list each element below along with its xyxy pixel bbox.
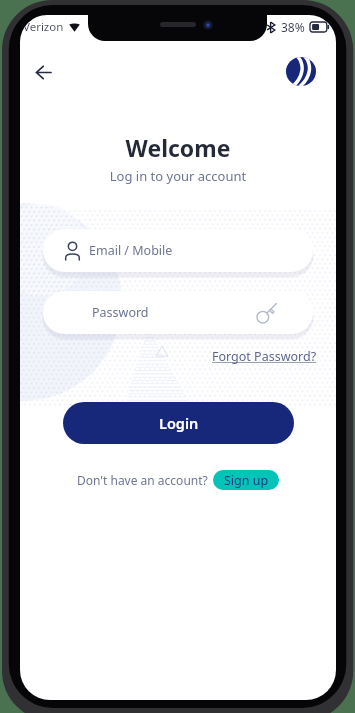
staticText: Sign up <box>224 472 269 489</box>
button[interactable]: Login <box>63 402 294 444</box>
staticText: Password <box>92 304 149 321</box>
staticText: Welcome <box>20 132 336 163</box>
staticText: 38% <box>281 19 305 35</box>
button[interactable]: Password <box>43 291 313 334</box>
staticText: Log in to your account <box>20 167 336 185</box>
staticText: Email / Mobile <box>89 242 173 259</box>
staticText: Verizon <box>23 19 64 35</box>
button[interactable]: Back <box>27 56 60 89</box>
staticText: Forgot Password? <box>212 348 317 365</box>
button[interactable]: Forgot Password? <box>210 346 319 367</box>
button[interactable]: Sign up <box>213 470 279 490</box>
staticText: Login <box>159 413 199 433</box>
button[interactable]: Email / Mobile <box>43 229 313 272</box>
button[interactable]: App logo <box>285 56 316 87</box>
staticText: Don't have an account? <box>77 472 208 488</box>
